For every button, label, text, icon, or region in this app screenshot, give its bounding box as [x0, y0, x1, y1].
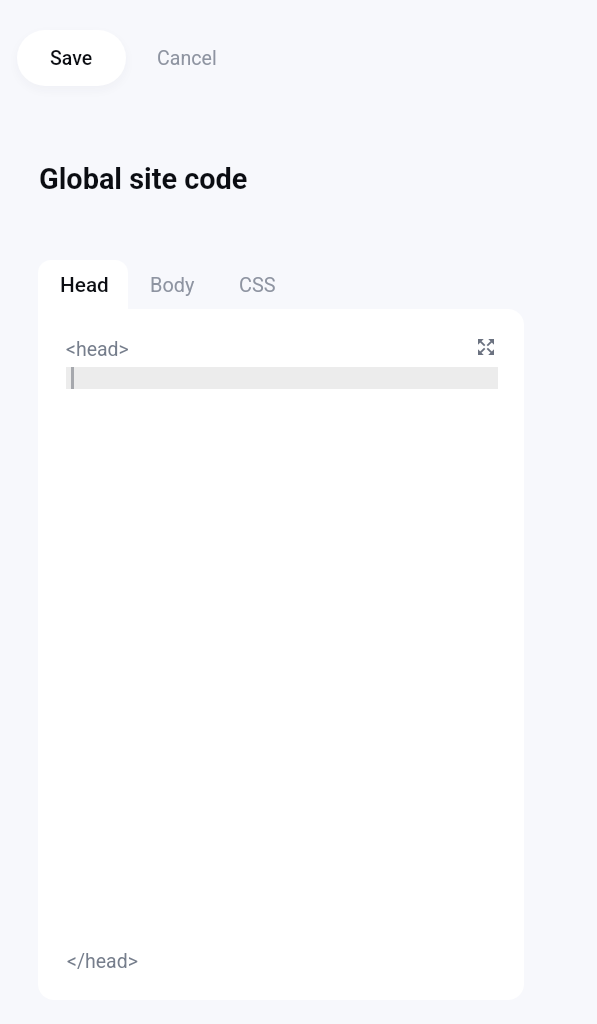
button[interactable]: Save	[17, 30, 126, 86]
staticText: Cancel	[157, 47, 217, 70]
staticText: CSS	[239, 274, 276, 297]
staticText: Save	[50, 47, 93, 70]
staticText: <head>	[66, 338, 129, 361]
button[interactable]: Expand editor	[472, 333, 500, 361]
staticText: </head>	[67, 950, 138, 973]
button[interactable]: Body	[129, 261, 216, 310]
button[interactable]: CSS	[218, 261, 297, 310]
staticText: Global site code	[39, 162, 248, 196]
staticText: Body	[150, 274, 195, 297]
button[interactable]: Cancel	[129, 30, 245, 86]
button[interactable]: Head	[38, 260, 128, 309]
staticText: Head	[60, 273, 109, 297]
